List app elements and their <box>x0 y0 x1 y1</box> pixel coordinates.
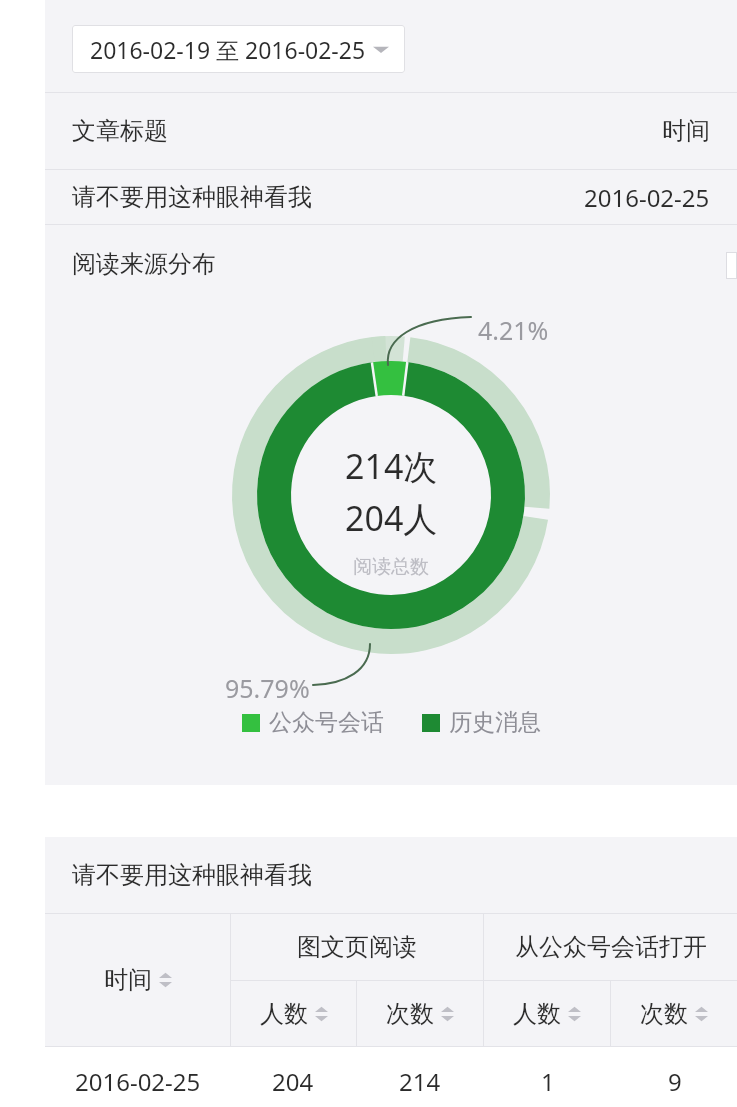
staticText: 阅读总数 <box>353 555 429 579</box>
staticText: 请不要用这种眼神看我 <box>72 182 312 212</box>
other: Sort <box>159 970 172 990</box>
staticText: 214次 <box>345 443 438 489</box>
button[interactable]: 2016-02-25 <box>45 1047 737 1107</box>
staticText: 公众号会话 <box>269 708 384 737</box>
staticText: 阅读来源分布 <box>72 249 216 279</box>
staticText: 从公众号会话打开 <box>515 932 707 962</box>
staticText: 95.79% <box>225 671 310 705</box>
other: Sort <box>315 1004 328 1024</box>
staticText: 人数 <box>513 999 561 1029</box>
staticText: 204 <box>272 1065 314 1098</box>
button[interactable]: 请不要用这种眼神看我 <box>45 170 737 224</box>
staticText: 1 <box>541 1065 555 1098</box>
staticText: 204人 <box>345 495 438 541</box>
button[interactable]: 次数 <box>611 981 737 1046</box>
staticText: 文章标题 <box>72 116 168 146</box>
button[interactable]: 次数 <box>357 981 483 1046</box>
staticText: 历史消息 <box>449 708 541 737</box>
button[interactable]: 人数 <box>484 981 610 1046</box>
staticText: 人数 <box>260 999 308 1029</box>
staticText: 次数 <box>640 999 688 1029</box>
button[interactable]: 2016-02-19 至 2016-02-25 <box>72 25 405 73</box>
other: Sort <box>568 1004 581 1024</box>
staticText: 214 <box>399 1065 441 1098</box>
staticText: 9 <box>668 1065 682 1098</box>
staticText: 时间 <box>662 116 710 146</box>
staticText: 2016-02-25 <box>75 1065 201 1098</box>
staticText: 请不要用这种眼神看我 <box>72 860 312 890</box>
staticText: 2016-02-19 至 2016-02-25 <box>90 34 366 65</box>
staticText: 4.21% <box>478 313 549 347</box>
staticText: 次数 <box>386 999 434 1029</box>
staticText: 图文页阅读 <box>297 932 417 962</box>
button[interactable]: 人数 <box>231 981 356 1046</box>
staticText: 2016-02-25 <box>584 181 710 214</box>
other: Sort <box>695 1004 708 1024</box>
button[interactable]: 时间 <box>45 914 230 1046</box>
other: Sort <box>441 1004 454 1024</box>
staticText: 时间 <box>104 965 152 995</box>
